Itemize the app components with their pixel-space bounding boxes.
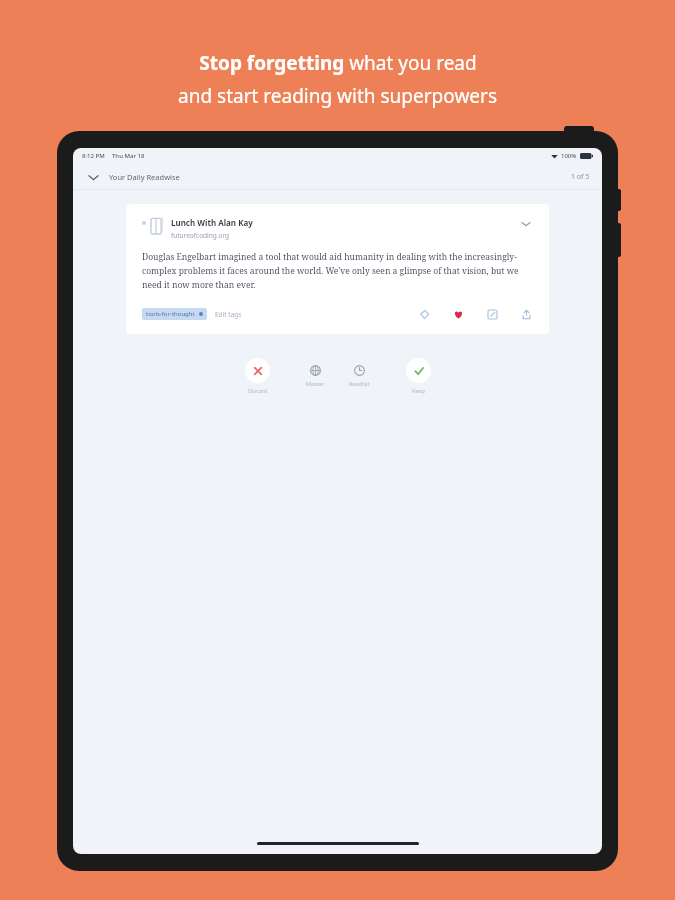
button[interactable]: Keep bbox=[404, 356, 433, 396]
button[interactable]: Readlist bbox=[347, 356, 372, 389]
button[interactable]: tools-for-thought bbox=[142, 308, 207, 320]
staticText: Stop forgetting what you read bbox=[199, 50, 477, 76]
button[interactable]: Collapse bbox=[85, 169, 101, 185]
staticText: 1 of 5 bbox=[571, 172, 590, 182]
staticText: and start reading with superpowers bbox=[178, 83, 497, 109]
staticText: futureofcoding.org bbox=[171, 231, 230, 240]
staticText: Douglas Engelbart imagined a tool that w… bbox=[142, 251, 533, 290]
button[interactable]: Expand bbox=[519, 217, 533, 231]
staticText: 8:12 PM bbox=[82, 152, 105, 160]
staticText: tools-for-thought bbox=[146, 310, 195, 318]
staticText: Keep bbox=[412, 387, 425, 394]
button[interactable]: Article bbox=[126, 204, 549, 334]
staticText: Thu Mar 18 bbox=[112, 152, 145, 160]
button[interactable]: Tag bbox=[417, 307, 431, 321]
button[interactable]: Edit tags bbox=[215, 310, 242, 319]
button[interactable]: Edit bbox=[485, 307, 499, 321]
button[interactable]: Favorite bbox=[451, 307, 465, 321]
button[interactable]: Share bbox=[519, 307, 533, 321]
staticText: 100% bbox=[561, 152, 577, 160]
button[interactable]: Article bbox=[151, 217, 164, 234]
button[interactable]: Master bbox=[304, 356, 327, 389]
staticText: Readlist bbox=[349, 380, 370, 387]
staticText: Master bbox=[306, 380, 325, 387]
staticText: Your Daily Readwise bbox=[109, 172, 180, 182]
staticText: Lunch With Alan Kay bbox=[171, 217, 253, 228]
staticText: Discard bbox=[248, 387, 268, 394]
button[interactable]: Discard bbox=[243, 356, 272, 396]
